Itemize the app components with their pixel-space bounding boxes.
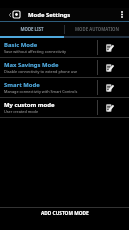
staticText: Smart Mode xyxy=(4,81,40,89)
staticText: Mode Settings xyxy=(28,11,71,19)
staticText: ADD CUSTOM MODE xyxy=(41,210,89,217)
staticText: Max Savings Mode xyxy=(4,61,59,69)
staticText: Disable connectivity to extend phone use xyxy=(4,69,78,74)
button[interactable]: Basic Mode xyxy=(0,38,97,57)
button[interactable]: Max Savings Mode xyxy=(0,58,97,77)
button[interactable]: Edit mode xyxy=(98,78,129,97)
button[interactable]: Edit mode xyxy=(98,58,129,77)
staticText: Manage connectivity with Smart Controls xyxy=(4,89,78,94)
staticText: My custom mode xyxy=(4,101,55,109)
button[interactable]: Edit mode xyxy=(98,38,129,57)
button[interactable]: MODE AUTOMATION xyxy=(65,22,129,36)
staticText: MODE AUTOMATION xyxy=(75,26,119,32)
staticText: Save without affecting connectivity xyxy=(4,49,67,54)
button[interactable]: Navigate up xyxy=(0,8,22,21)
button[interactable]: MODE LIST xyxy=(0,22,64,36)
button[interactable]: ADD CUSTOM MODE xyxy=(0,208,129,218)
staticText: Basic Mode xyxy=(4,41,38,49)
button[interactable]: Edit mode xyxy=(98,98,129,117)
button[interactable]: My custom mode xyxy=(0,98,97,117)
button[interactable]: Smart Mode xyxy=(0,78,97,97)
staticText: MODE LIST xyxy=(20,26,44,32)
button[interactable]: More options xyxy=(115,8,129,21)
staticText: User created mode xyxy=(4,109,39,114)
